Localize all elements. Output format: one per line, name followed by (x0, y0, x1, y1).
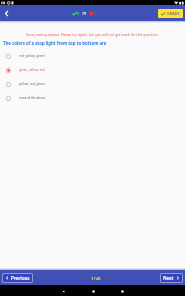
button[interactable]: Back (0, 7, 13, 20)
button[interactable]: Flagged (82, 11, 87, 16)
staticText: 0 (77, 11, 80, 16)
staticText: yellow, red, green (19, 82, 45, 86)
button[interactable]: red, yellow, green (0, 49, 185, 63)
button[interactable]: Recents (118, 287, 126, 295)
button[interactable]: yellow, red, green (0, 77, 185, 91)
staticText: Sorry wrong answer. Please try again, bu… (0, 32, 185, 37)
staticText: 1 (94, 11, 97, 16)
staticText: The colors of a stop light from top to b… (3, 40, 107, 46)
button[interactable]: none of the above (0, 91, 185, 105)
button[interactable]: Correct count (72, 11, 80, 16)
staticText: GRADE (167, 11, 180, 16)
staticText: green, yellow, red (19, 68, 45, 72)
button[interactable]: green, yellow, red (0, 63, 185, 77)
button[interactable]: Back (59, 287, 67, 295)
button[interactable]: Wrong count (89, 11, 97, 16)
staticText: red, yellow, green (19, 54, 45, 58)
button[interactable]: Next (160, 273, 183, 283)
staticText: Next (163, 275, 174, 281)
button[interactable]: GRADE (158, 9, 183, 18)
button[interactable]: Previous (2, 273, 33, 283)
staticText: 1 / 40 (91, 276, 101, 281)
staticText: Previous (11, 275, 30, 281)
staticText: none of the above (19, 96, 46, 100)
button[interactable]: Home (89, 287, 97, 295)
